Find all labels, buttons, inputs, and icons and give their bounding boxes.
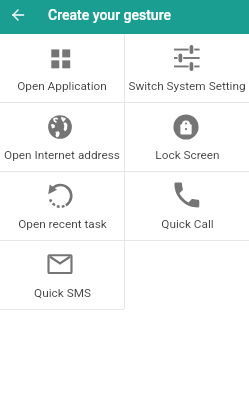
button[interactable]: Open Internet address <box>0 103 124 171</box>
button[interactable]: Quick Call <box>125 172 249 240</box>
staticText: Open Internet address <box>4 148 120 162</box>
staticText: Lock Screen <box>155 148 220 162</box>
staticText: Open recent task <box>18 217 107 231</box>
staticText: Create your gesture <box>48 7 171 23</box>
button[interactable]: Open Application <box>0 34 124 102</box>
staticText: Open Application <box>17 79 107 93</box>
button[interactable]: Quick SMS <box>0 241 124 309</box>
button[interactable]: Lock Screen <box>125 103 249 171</box>
button[interactable]: Open recent task <box>0 172 124 240</box>
button[interactable]: Switch System Setting <box>125 34 249 102</box>
staticText: Switch System Setting <box>128 79 246 93</box>
staticText: Quick SMS <box>34 286 91 300</box>
staticText: Quick Call <box>161 217 214 231</box>
button[interactable]: Back <box>1 0 35 32</box>
